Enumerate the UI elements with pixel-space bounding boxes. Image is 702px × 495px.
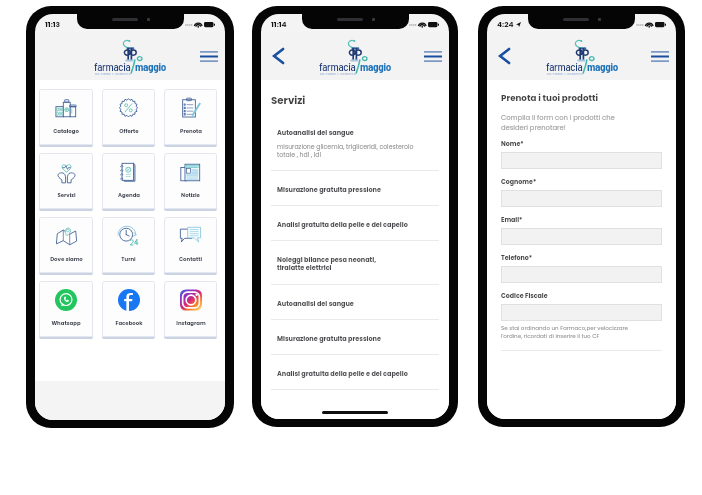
staticText: Cognome* [501, 177, 537, 186]
button[interactable]: Autoanalisi del sangue [271, 128, 439, 185]
staticText: Misurazione gratuita pressione [277, 334, 382, 343]
staticText: maggio [587, 60, 618, 73]
staticText: DR. PIERRE I CORRETTA [320, 72, 356, 76]
staticText: farmacia [319, 60, 356, 73]
button[interactable]: Instagram [164, 281, 217, 339]
button[interactable]: Misurazione gratuita pressione [271, 334, 439, 369]
staticText: Servizi [271, 93, 306, 107]
staticText: DR. PIERRE I CORRETTA [95, 72, 131, 76]
button[interactable]: Open menu [421, 44, 445, 68]
button[interactable]: Back [266, 44, 290, 68]
staticText: Noleggi bilance pesa neonati, tiralatte … [277, 255, 377, 273]
staticText: 4:24 [497, 19, 514, 29]
button[interactable]: Contatti [164, 217, 217, 275]
button[interactable]: Offerte [102, 89, 155, 147]
staticText: Email* [501, 215, 523, 224]
staticText: Autoanalisi del sangue [277, 128, 354, 137]
staticText: maggio [135, 60, 166, 73]
button[interactable]: Prenota [164, 89, 217, 147]
button[interactable]: Analisi gratuita della pelle e del capel… [271, 369, 439, 404]
button[interactable]: Agenda [102, 153, 155, 211]
staticText: 11:14 [271, 19, 287, 29]
button[interactable]: Catalogo [39, 89, 93, 147]
button[interactable]: Open menu [648, 44, 672, 68]
staticText: 11:13 [45, 19, 61, 29]
staticText: DR. PIERRE I CORRETTA [547, 72, 583, 76]
staticText: Instagram [176, 319, 206, 327]
staticText: Agenda [118, 191, 140, 199]
staticText: Autoanalisi del sangue [277, 299, 354, 308]
button[interactable]: Back [492, 44, 516, 68]
button[interactable] [501, 190, 662, 207]
staticText: farmacia [94, 60, 131, 73]
staticText: Turni [121, 255, 136, 263]
staticText: Servizi [57, 191, 76, 199]
staticText: Contatti [179, 255, 202, 263]
staticText: Compila il form con i prodotti che desid… [501, 113, 615, 132]
staticText: Dove siamo [50, 255, 83, 263]
staticText: farmacia [546, 60, 583, 73]
staticText: Telefono* [501, 253, 533, 262]
staticText: Prenota i tuoi prodotti [501, 92, 599, 104]
staticText: Offerte [119, 127, 139, 135]
button[interactable]: Servizi [39, 153, 93, 211]
button[interactable]: Whatsapp [39, 281, 93, 339]
button[interactable] [501, 266, 662, 283]
staticText: Prenota [180, 127, 202, 135]
button[interactable]: Dove siamo [39, 217, 93, 275]
button[interactable]: Facebook [102, 281, 155, 339]
button[interactable]: Misurazione gratuita pressione [271, 185, 439, 220]
staticText: Se stai ordinando un Farmaco,per velociz… [501, 324, 629, 340]
button[interactable] [501, 152, 662, 169]
button[interactable] [501, 304, 662, 321]
staticText: maggio [360, 60, 391, 73]
staticText: Facebook [115, 319, 143, 327]
staticText: Whatsapp [51, 319, 81, 327]
staticText: Analisi gratuita della pelle e del capel… [277, 220, 408, 229]
staticText: Codice Fiscale [501, 291, 548, 300]
button[interactable]: Notizie [164, 153, 217, 211]
button[interactable]: Noleggi bilance pesa neonati, tiralatte … [271, 255, 439, 299]
button[interactable]: Open menu [197, 44, 221, 68]
button[interactable]: Analisi gratuita della pelle e del capel… [271, 220, 439, 255]
button[interactable]: Turni [102, 217, 155, 275]
button[interactable] [501, 228, 662, 245]
staticText: Catalogo [53, 127, 79, 135]
staticText: Nome* [501, 139, 524, 148]
staticText: Analisi gratuita della pelle e del capel… [277, 369, 408, 378]
button[interactable]: Autoanalisi del sangue [271, 299, 439, 334]
staticText: Misurazione gratuita pressione [277, 185, 382, 194]
staticText: misurazione glicemia, trigliceridi, cole… [277, 142, 414, 159]
staticText: Notizie [181, 191, 200, 199]
